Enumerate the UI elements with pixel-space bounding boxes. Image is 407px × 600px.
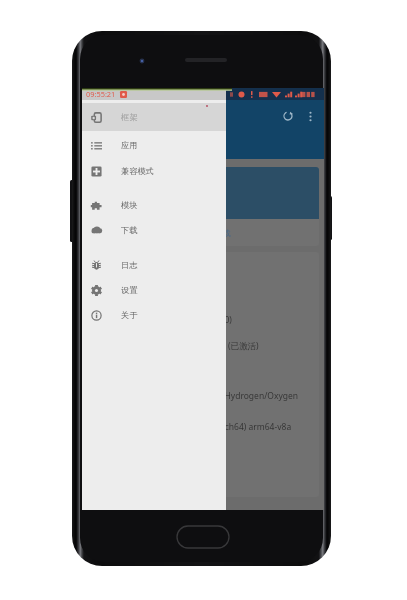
button[interactable]: 兼容模式 [82,158,226,184]
staticText: 09:55:21 [86,89,116,99]
staticText: 日志 [121,260,138,270]
staticText: 模块 [121,200,138,210]
staticText: 设备型号: OnePlus ONEPLUS A5 (Hydrogen/Oxyge… [95,390,299,402]
button[interactable]: More options [300,106,320,126]
staticText: 兼容模式 [121,166,154,176]
staticText: 关于 [121,310,138,320]
button[interactable]: Refresh [276,104,300,128]
staticText: 设置 [121,285,138,295]
staticText: 应用 [121,140,138,150]
button[interactable]: 设置 [82,277,226,303]
staticText: Android 版本: 8.0.0 SDK 26.1 (aarch64) arm… [95,421,292,433]
staticText: 下载 [215,228,231,238]
button[interactable]: 应用 [82,132,226,158]
button[interactable]: 下载 [82,217,226,243]
staticText: Xposed 框架版本 89 (2017-09-09-0) [95,314,232,326]
button[interactable]: 框架 [82,103,226,131]
staticText: 框架 [121,112,138,122]
staticText: 当前已安装的 Xposed 框架版本 89 (已激活) [95,340,259,352]
button[interactable]: 日志 [82,252,226,278]
button[interactable]: 关于 [82,302,226,328]
button[interactable]: 模块 [82,192,226,218]
staticText: 下载 [121,225,138,235]
